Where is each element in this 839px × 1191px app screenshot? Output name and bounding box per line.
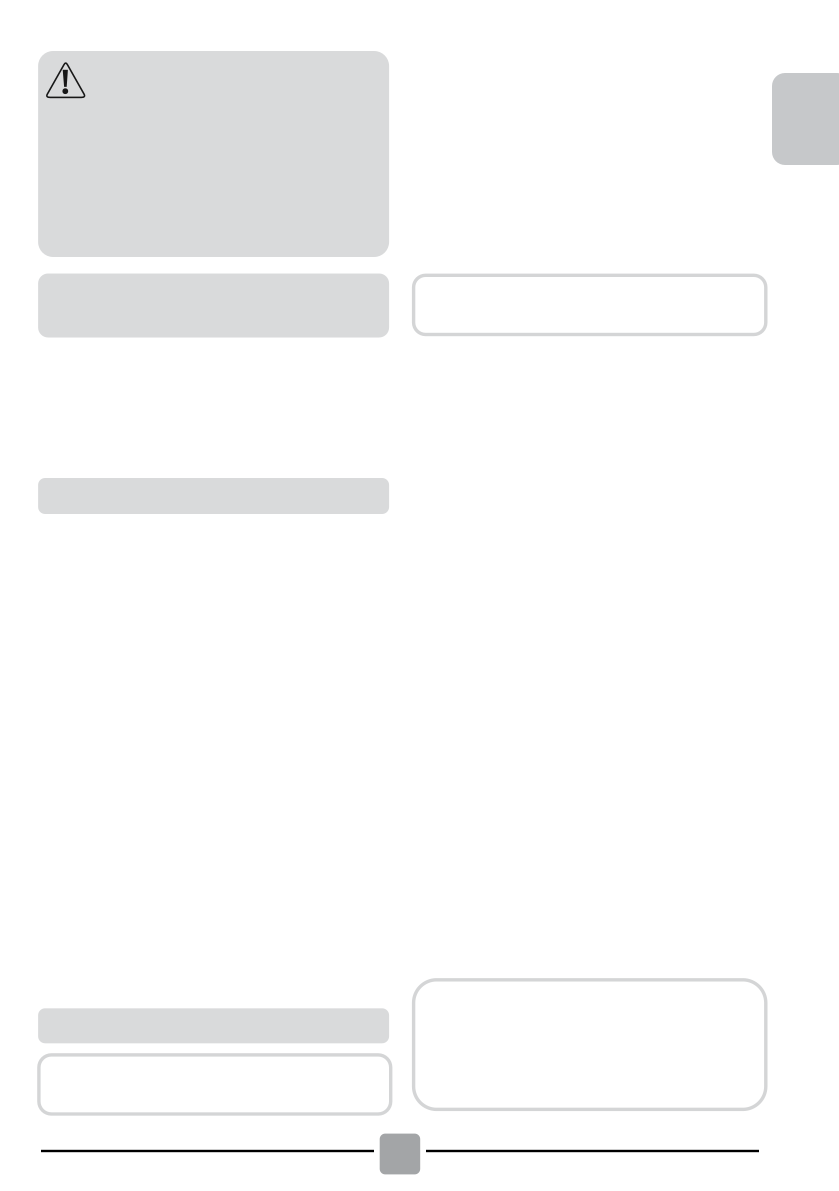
button[interactable]: Note — [412, 978, 767, 1111]
button[interactable]: Safety warning — [38, 51, 389, 257]
button[interactable]: Note — [37, 1053, 392, 1116]
button[interactable]: Chapter tab — [772, 73, 839, 165]
button[interactable]: Page number — [380, 1134, 420, 1174]
button[interactable]: Note — [412, 274, 767, 336]
